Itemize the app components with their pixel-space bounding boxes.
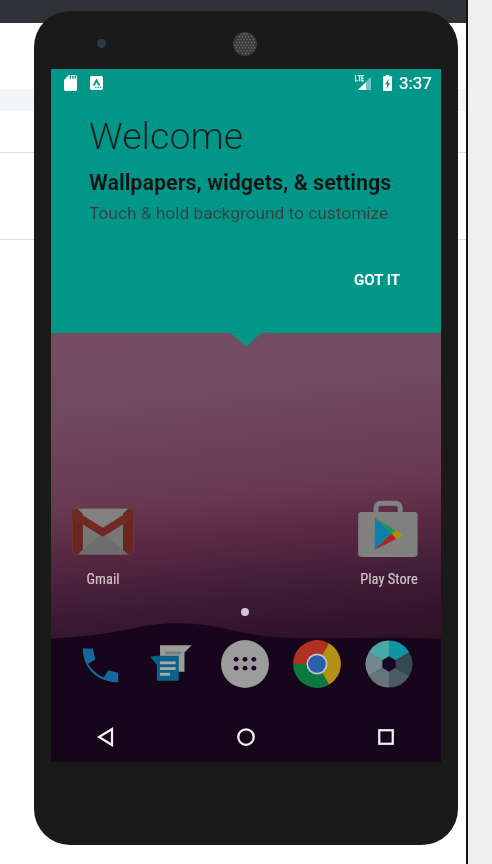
button[interactable]: Gmail (51, 502, 155, 588)
button[interactable]: All apps (219, 638, 271, 690)
button[interactable]: GOT IT (338, 263, 416, 297)
button[interactable]: Phone (74, 638, 126, 690)
staticText: GOT IT (354, 271, 400, 289)
staticText: Gmail (86, 571, 120, 588)
button[interactable]: Camera (363, 638, 415, 690)
button[interactable]: Chrome (291, 638, 343, 690)
button[interactable]: Messages (146, 638, 198, 690)
button[interactable]: Recents (361, 712, 411, 762)
button[interactable]: Back (81, 712, 131, 762)
staticText: Play Store (360, 571, 418, 588)
staticText: 3:37 (399, 73, 432, 93)
staticText: Welcome (89, 114, 244, 158)
button[interactable]: Play Store (337, 502, 441, 588)
button[interactable]: Home (221, 712, 271, 762)
staticText: Wallpapers, widgets, & settings (89, 170, 392, 195)
staticText: Touch & hold background to customize (89, 203, 389, 223)
